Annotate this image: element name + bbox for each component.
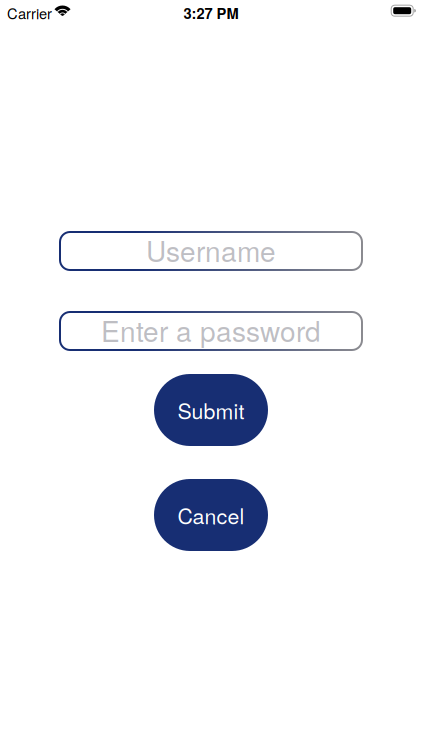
textField[interactable]: Enter a password bbox=[59, 311, 363, 351]
staticText: Submit bbox=[177, 395, 244, 425]
staticText: Enter a password bbox=[101, 310, 321, 350]
button[interactable]: Cancel bbox=[154, 479, 268, 551]
button[interactable]: Submit bbox=[154, 374, 268, 446]
staticText: Username bbox=[146, 230, 276, 270]
staticText: 3:27 PM bbox=[183, 3, 238, 23]
staticText: Carrier bbox=[7, 3, 52, 23]
textField[interactable]: Username bbox=[59, 231, 363, 271]
staticText: Cancel bbox=[177, 500, 244, 530]
